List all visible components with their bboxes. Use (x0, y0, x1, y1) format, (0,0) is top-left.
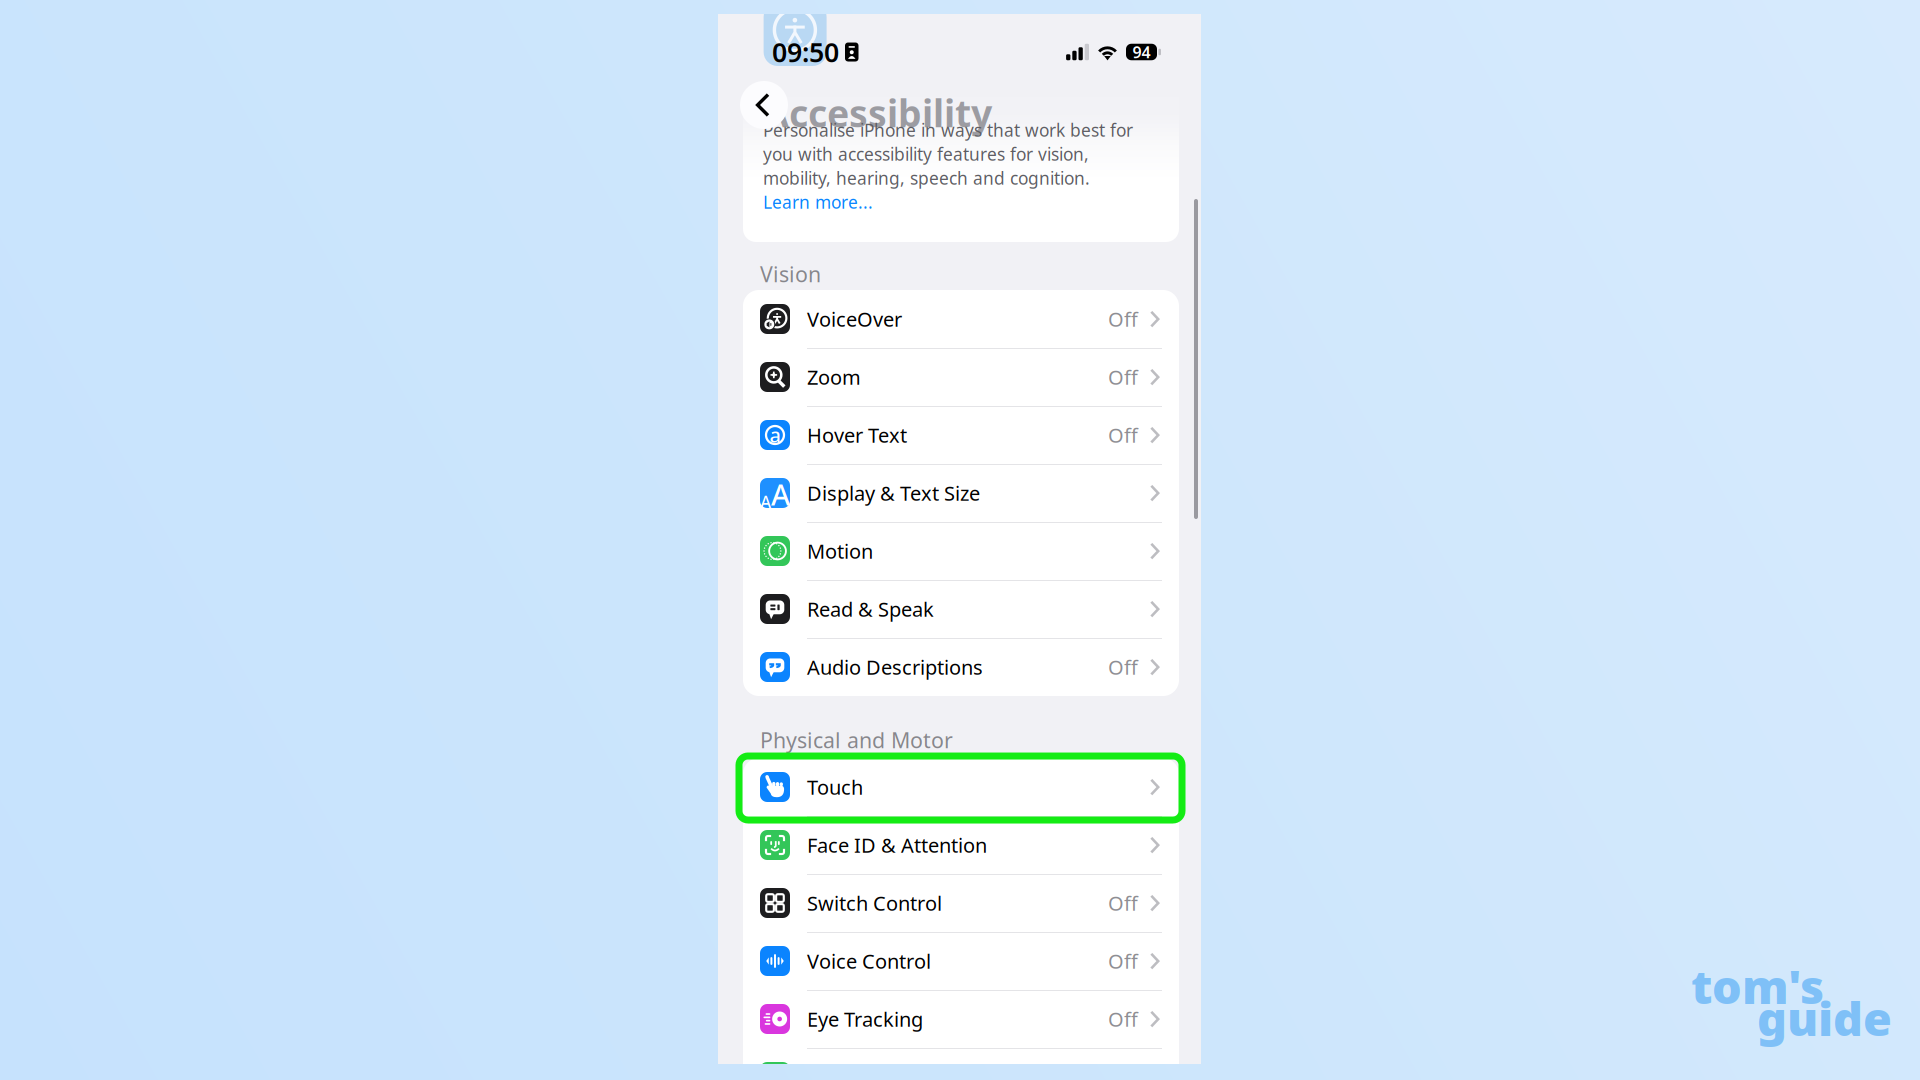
staticText: Vision (760, 260, 821, 288)
staticText: Face ID & Attention (807, 832, 987, 858)
button[interactable]: Eye Tracking (743, 990, 1179, 1048)
button[interactable]: Touch (743, 758, 1179, 816)
staticText: Off (1108, 306, 1138, 332)
staticText: Personalise iPhone in ways that work bes… (763, 118, 1133, 141)
staticText: guide (1757, 987, 1892, 1049)
staticText: A (771, 475, 790, 514)
staticText: Eye Tracking (807, 1006, 923, 1032)
button[interactable]: Audio Descriptions (743, 638, 1179, 696)
button[interactable]: Learn more... (763, 190, 1239, 214)
button[interactable]: Motion (743, 522, 1179, 580)
staticText: Accessibility (763, 88, 992, 138)
staticText: Touch (807, 774, 863, 800)
button[interactable]: a (743, 406, 1179, 464)
staticText: Read & Speak (807, 596, 934, 622)
staticText: 94 (1132, 41, 1150, 63)
staticText: Off (1108, 890, 1138, 916)
staticText: Audio Descriptions (807, 654, 983, 680)
staticText: Motion (807, 538, 873, 564)
staticText: Learn more... (763, 190, 873, 213)
staticText: VoiceOver (807, 306, 902, 332)
staticText: Voice Control (807, 948, 931, 974)
staticText: Off (1108, 364, 1138, 390)
button[interactable]: Zoom (743, 348, 1179, 406)
button[interactable]: Face ID & Attention (743, 816, 1179, 874)
button[interactable]: Switch Control (743, 874, 1179, 932)
button[interactable]: Back (740, 81, 788, 129)
staticText: Off (1108, 1006, 1138, 1032)
button[interactable]: A (743, 464, 1179, 522)
staticText: Off (1108, 948, 1138, 974)
staticText: Zoom (807, 364, 861, 390)
staticText: A (760, 490, 771, 513)
staticText: Display & Text Size (807, 480, 980, 506)
staticText: Off (1108, 654, 1138, 680)
staticText: 09:50 (772, 34, 839, 70)
button[interactable] (743, 1048, 1179, 1080)
staticText: Physical and Motor (760, 726, 953, 754)
button[interactable]: VoiceOver (743, 290, 1179, 348)
staticText: Off (1108, 422, 1138, 448)
staticText: a (769, 421, 780, 448)
staticText: Switch Control (807, 890, 942, 916)
staticText: tom's (1691, 955, 1824, 1017)
button[interactable]: Read & Speak (743, 580, 1179, 638)
button[interactable]: Voice Control (743, 932, 1179, 990)
staticText: mobility, hearing, speech and cognition. (763, 166, 1090, 189)
staticText: Hover Text (807, 422, 907, 448)
staticText: you with accessibility features for visi… (763, 142, 1089, 165)
